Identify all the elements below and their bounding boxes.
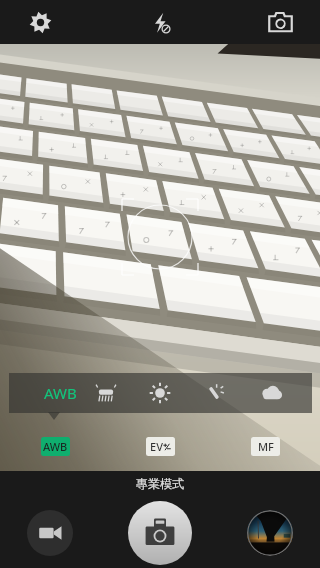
staticText: AWB <box>44 383 77 403</box>
button[interactable]: Shutter <box>128 501 192 565</box>
button[interactable]: Incandescent <box>86 373 126 413</box>
staticText: AWB <box>43 439 68 454</box>
staticText: MF <box>258 439 274 454</box>
button[interactable]: Settings <box>18 0 62 44</box>
button[interactable]: Gallery <box>247 510 293 556</box>
staticText: EV <box>150 439 163 454</box>
button[interactable]: Daylight <box>140 373 180 413</box>
staticText: 專業模式 <box>136 476 184 491</box>
button[interactable]: Flash off <box>138 0 182 44</box>
button[interactable]: Video <box>27 510 73 556</box>
button[interactable]: Switch camera <box>258 0 302 44</box>
button[interactable]: AWB <box>41 437 70 456</box>
button[interactable]: Cloudy <box>251 373 291 413</box>
button[interactable]: MF <box>251 437 280 456</box>
button[interactable]: AWB <box>31 373 89 413</box>
button[interactable]: EV <box>146 437 175 456</box>
button[interactable]: Fluorescent <box>194 373 234 413</box>
